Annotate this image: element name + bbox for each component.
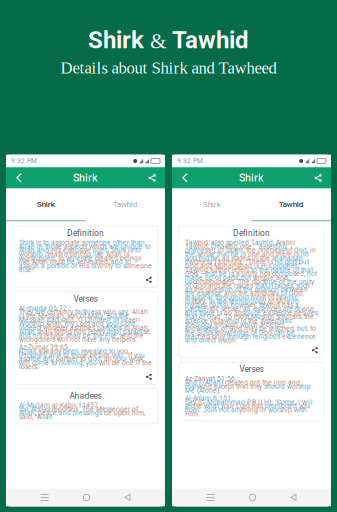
staticText: Ahadees	[69, 391, 101, 401]
staticText: 9:32 PM	[11, 157, 37, 165]
staticText: Verses	[73, 294, 97, 304]
staticText: Al-Mu'jam al-Kabir 11457 : Ibn Abbas rep…	[19, 401, 145, 421]
button[interactable]: Tawhid	[85, 189, 165, 220]
button[interactable]: Recent apps	[207, 494, 215, 501]
staticText: Verses	[239, 364, 263, 374]
staticText: Shirk	[203, 199, 221, 209]
button[interactable]: Back	[9, 167, 29, 188]
button[interactable]: Shirk	[172, 189, 251, 220]
staticText: Shirk & Tawhid	[88, 26, 249, 54]
button[interactable]: Back	[124, 494, 130, 501]
button[interactable]: Back	[175, 167, 195, 188]
staticText: 9:32 PM	[177, 157, 203, 165]
button[interactable]: Share	[145, 373, 152, 380]
button[interactable]: Shirk	[6, 189, 85, 220]
staticText: Tawhid, also spelled Tauhid, Arabic Tawh…	[185, 239, 318, 344]
staticText: Al-maida 05:72 : They are certainly fait…	[19, 304, 152, 371]
button[interactable]: Share	[142, 167, 162, 188]
staticText: Shirk	[239, 172, 264, 184]
button[interactable]: Recent apps	[41, 494, 49, 501]
staticText: Definition	[67, 228, 104, 238]
staticText: Shirk	[73, 172, 98, 184]
button[interactable]: Tawhid	[251, 189, 331, 220]
staticText: Details about Shirk and Tawheed	[60, 59, 276, 77]
staticText: Shirk	[37, 199, 55, 209]
button[interactable]: Share	[311, 347, 318, 353]
button[interactable]: Share	[145, 276, 152, 283]
staticText: Definition	[233, 228, 270, 238]
staticText: Shirk is to associate someone other than…	[19, 239, 152, 274]
button[interactable]: Home	[249, 494, 256, 501]
staticText: Tawhid	[113, 199, 138, 209]
button[interactable]: Home	[83, 494, 90, 501]
button[interactable]: Share	[308, 167, 328, 188]
staticText: Az-Zariyat 51:56 : And I (Allah) created…	[185, 375, 313, 418]
button[interactable]: Back	[290, 494, 296, 501]
staticText: Tawhid	[279, 199, 304, 209]
